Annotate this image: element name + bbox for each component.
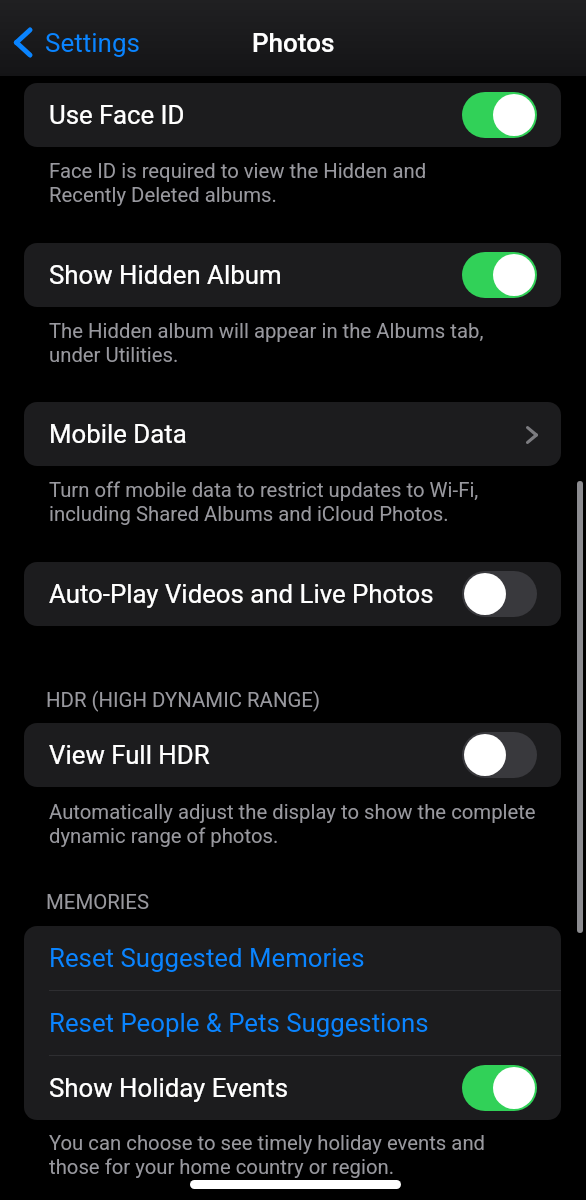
button[interactable]: Reset Suggested Memories — [24, 926, 561, 990]
button[interactable]: View Full HDR — [24, 723, 561, 787]
button[interactable]: Settings — [4, 14, 154, 68]
button[interactable]: Off — [462, 571, 537, 617]
button[interactable]: On — [462, 92, 537, 138]
staticText: Reset Suggested Memories — [49, 943, 365, 973]
staticText: The Hidden album will appear in the Albu… — [49, 319, 484, 367]
other: Open — [526, 426, 538, 444]
button[interactable]: Mobile Data — [24, 402, 561, 466]
button[interactable]: Off — [462, 732, 537, 778]
staticText: View Full HDR — [49, 740, 210, 770]
staticText: Face ID is required to view the Hidden a… — [49, 159, 427, 207]
staticText: Photos — [252, 28, 335, 58]
staticText: You can choose to see timely holiday eve… — [49, 1131, 486, 1179]
staticText: Use Face ID — [49, 100, 185, 130]
staticText: MEMORIES — [46, 890, 150, 914]
button[interactable]: Auto-Play Videos and Live Photos — [24, 562, 561, 626]
button[interactable]: Show Hidden Album — [24, 243, 561, 307]
staticText: Mobile Data — [49, 419, 187, 449]
staticText: Automatically adjust the display to show… — [49, 800, 536, 848]
button[interactable]: On — [462, 252, 537, 298]
staticText: Settings — [45, 28, 140, 58]
button[interactable]: Show Holiday Events — [24, 1056, 561, 1120]
staticText: Reset People & Pets Suggestions — [49, 1008, 429, 1038]
staticText: Turn off mobile data to restrict updates… — [49, 478, 479, 526]
staticText: HDR (HIGH DYNAMIC RANGE) — [46, 688, 321, 712]
staticText: Show Hidden Album — [49, 260, 282, 290]
button[interactable]: On — [462, 1065, 537, 1111]
button[interactable]: Use Face ID — [24, 83, 561, 147]
staticText: Show Holiday Events — [49, 1073, 289, 1103]
button[interactable]: Reset People & Pets Suggestions — [24, 991, 561, 1055]
staticText: Auto-Play Videos and Live Photos — [49, 579, 434, 609]
